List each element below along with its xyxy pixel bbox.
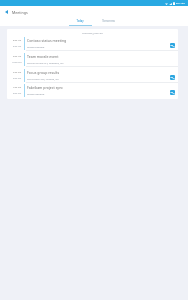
staticText: 8:11 AM [176,2,185,5]
staticText: 4:00 PM [13,71,22,74]
button[interactable]: Join online meeting [168,88,176,96]
button[interactable]: Tomorrow [94,18,122,26]
staticText: 9:00 AM [13,55,22,58]
staticText: 8:00 PM [13,92,22,95]
staticText: 7:00 PM [13,86,22,89]
staticText: Focus group results [27,70,60,75]
staticText: Fabrikam project sync [27,85,63,90]
staticText: Conf room 180, Atlanta, GA [27,77,59,80]
button[interactable]: 8:00 AM [7,35,178,51]
staticText: Today [76,19,84,23]
button[interactable]: 4:00 PM [7,67,178,83]
staticText: 8:30 AM [13,45,22,48]
staticText: Skype meeting [27,45,45,48]
staticText: Contoso status meeting [27,38,67,43]
staticText: Meetings [12,10,28,15]
staticText: School of Fine Art, Marietta, GA [27,61,64,64]
staticText: Skype Meeting [27,92,45,95]
staticText: Tomorrow [102,19,115,23]
button[interactable]: 7:00 PM [7,82,178,98]
button[interactable]: Join online meeting [168,73,176,81]
staticText: Thursday, June 4th [82,31,103,34]
staticText: Team morale event [27,54,59,59]
button[interactable]: Join online meeting [168,41,176,49]
button[interactable]: Back [0,6,13,18]
button[interactable]: 9:00 AM [7,51,178,67]
staticText: 5:00 PM [13,77,22,80]
staticText: 12:00 PM [12,61,22,64]
button[interactable]: Today [66,18,94,26]
staticText: 8:00 AM [13,39,22,42]
